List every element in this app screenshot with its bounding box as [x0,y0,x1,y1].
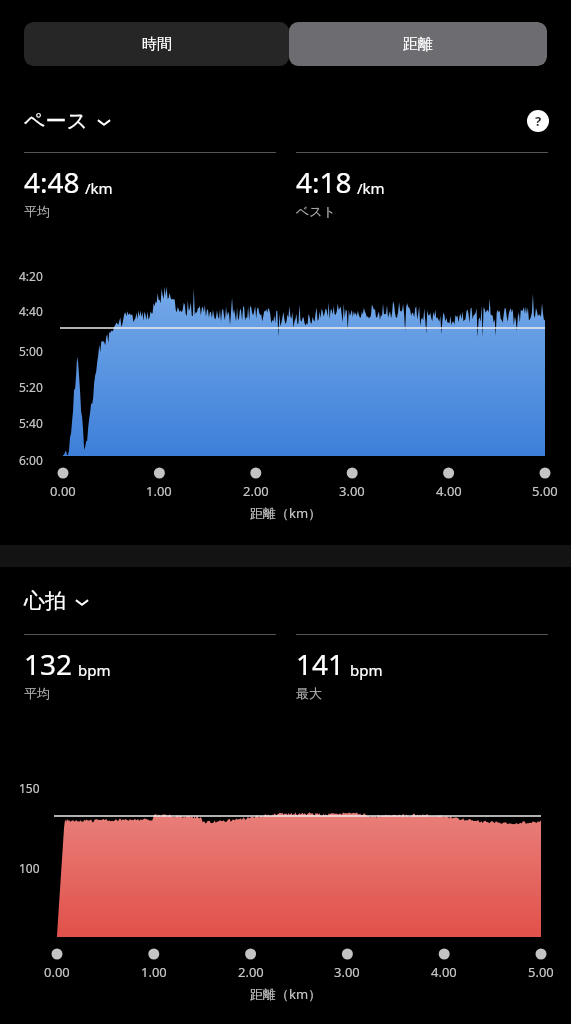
staticText: 距離（km） [0,504,571,522]
staticText: 1.00 [141,963,167,981]
staticText: 0.00 [50,482,76,500]
button[interactable]: 心拍 [24,588,90,614]
staticText: 1.00 [146,482,172,500]
button[interactable]: Help [526,109,550,133]
staticText: bpm [350,660,383,680]
staticText: 4:18 [296,163,352,201]
staticText: 平均 [24,203,50,219]
button[interactable]: ペース [24,108,112,134]
staticText: 時間 [142,35,172,54]
staticText: ペース [24,108,88,134]
staticText: ベスト [296,203,336,219]
staticText: 132 [24,645,73,683]
staticText: 5.00 [528,963,554,981]
staticText: 5:20 [19,379,43,395]
staticText: 3.00 [339,482,365,500]
staticText: 距離（km） [0,985,571,1003]
staticText: 5.00 [532,482,558,500]
staticText: 141 [296,645,345,683]
staticText: ? [535,112,542,130]
staticText: 距離 [403,35,433,54]
staticText: 4:20 [19,268,43,284]
staticText: /km [357,178,385,198]
staticText: /km [85,178,113,198]
staticText: 最大 [296,685,322,701]
staticText: bpm [78,660,111,680]
staticText: 4:40 [19,303,43,319]
staticText: 2.00 [238,963,264,981]
button[interactable]: 時間 [24,22,289,66]
staticText: 100 [19,860,40,876]
staticText: 6:00 [19,452,43,468]
staticText: 3.00 [334,963,360,981]
staticText: 0.00 [44,963,70,981]
staticText: 150 [19,780,40,796]
staticText: 平均 [24,685,50,701]
staticText: 4.00 [431,963,457,981]
staticText: 2.00 [243,482,269,500]
staticText: 5:00 [19,343,43,359]
staticText: 4.00 [436,482,462,500]
staticText: 心拍 [24,588,66,614]
staticText: 5:40 [19,415,43,431]
staticText: 4:48 [24,163,80,201]
button[interactable]: 距離 [289,22,547,66]
